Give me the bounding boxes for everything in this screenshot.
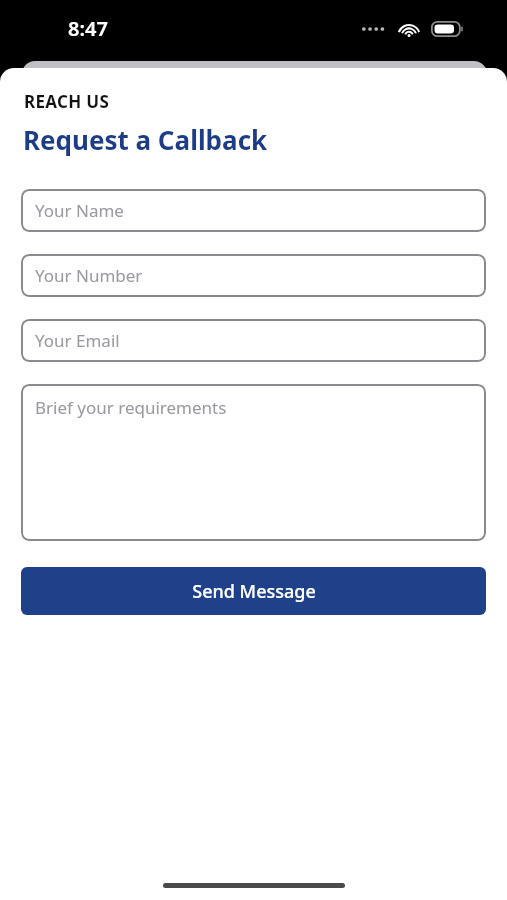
button[interactable]: Your Name [21, 189, 486, 232]
button[interactable]: Brief your requirements [21, 384, 486, 541]
staticText: 8:47 [68, 15, 108, 42]
staticText: Your Number [35, 264, 143, 287]
staticText: Your Name [35, 199, 124, 222]
staticText: Your Email [35, 329, 120, 352]
button[interactable]: Send Message [21, 567, 486, 615]
staticText: REACH US [24, 90, 110, 113]
button[interactable]: Your Number [21, 254, 486, 297]
staticText: Send Message [192, 579, 316, 604]
button[interactable]: Your Email [21, 319, 486, 362]
staticText: Brief your requirements [35, 396, 227, 419]
staticText: Request a Callback [23, 122, 268, 157]
